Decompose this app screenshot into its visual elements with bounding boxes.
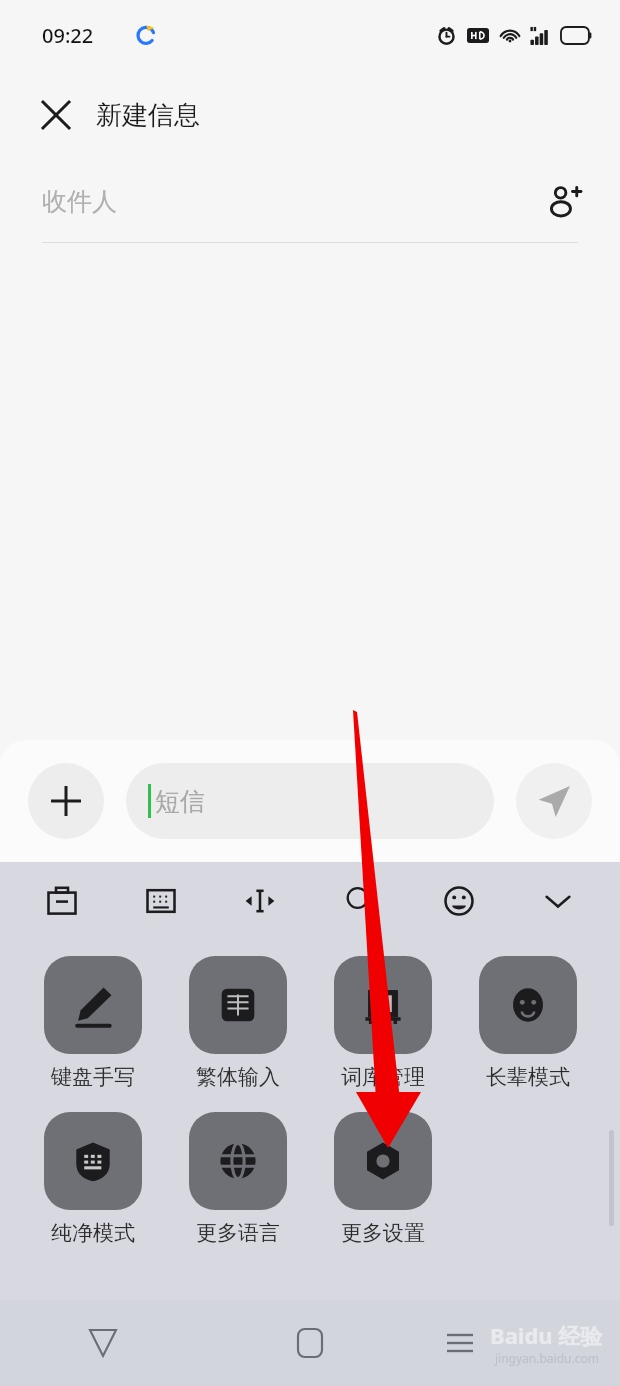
button[interactable]: 短信 [126,763,494,839]
button[interactable]: Emoji [431,873,487,929]
button[interactable]: Hide keyboard [530,873,586,929]
staticText: 长辈模式 [486,1064,570,1090]
staticText: 09:22 [42,22,94,49]
staticText: 收件人 [42,186,538,217]
button[interactable]: Home [280,1313,340,1373]
staticText: 繁体输入 [196,1064,280,1090]
button[interactable]: Back [73,1313,133,1373]
staticText: jingyan.baidu.com [495,1350,599,1366]
button[interactable]: Search [332,873,388,929]
button[interactable]: 词库管理 [310,956,455,1090]
button[interactable]: 更多设置 [310,1112,455,1246]
button[interactable]: 键盘手写 [20,956,165,1090]
staticText: Baidu 经验 [490,1320,603,1350]
button[interactable]: Clipboard [34,873,90,929]
button[interactable]: 纯净模式 [20,1112,165,1246]
button[interactable]: 更多语言 [165,1112,310,1246]
staticText: 词库管理 [341,1064,425,1090]
staticText: 短信 [155,786,205,817]
staticText: 更多语言 [196,1220,280,1246]
button[interactable]: 收件人 [0,160,620,242]
button[interactable]: Send [516,763,592,839]
button[interactable]: Recents [430,1313,490,1373]
button[interactable]: Move cursor [232,873,288,929]
button[interactable]: Add contact [538,175,590,227]
button[interactable]: 长辈模式 [455,956,600,1090]
button[interactable]: Keyboard layout [133,873,189,929]
staticText: 新建信息 [96,99,200,132]
button[interactable]: Add attachment [28,763,104,839]
staticText: 更多设置 [341,1220,425,1246]
button[interactable]: Close [28,87,84,143]
staticText: 键盘手写 [51,1064,135,1090]
staticText: 纯净模式 [51,1220,135,1246]
button[interactable]: 繁体输入 [165,956,310,1090]
